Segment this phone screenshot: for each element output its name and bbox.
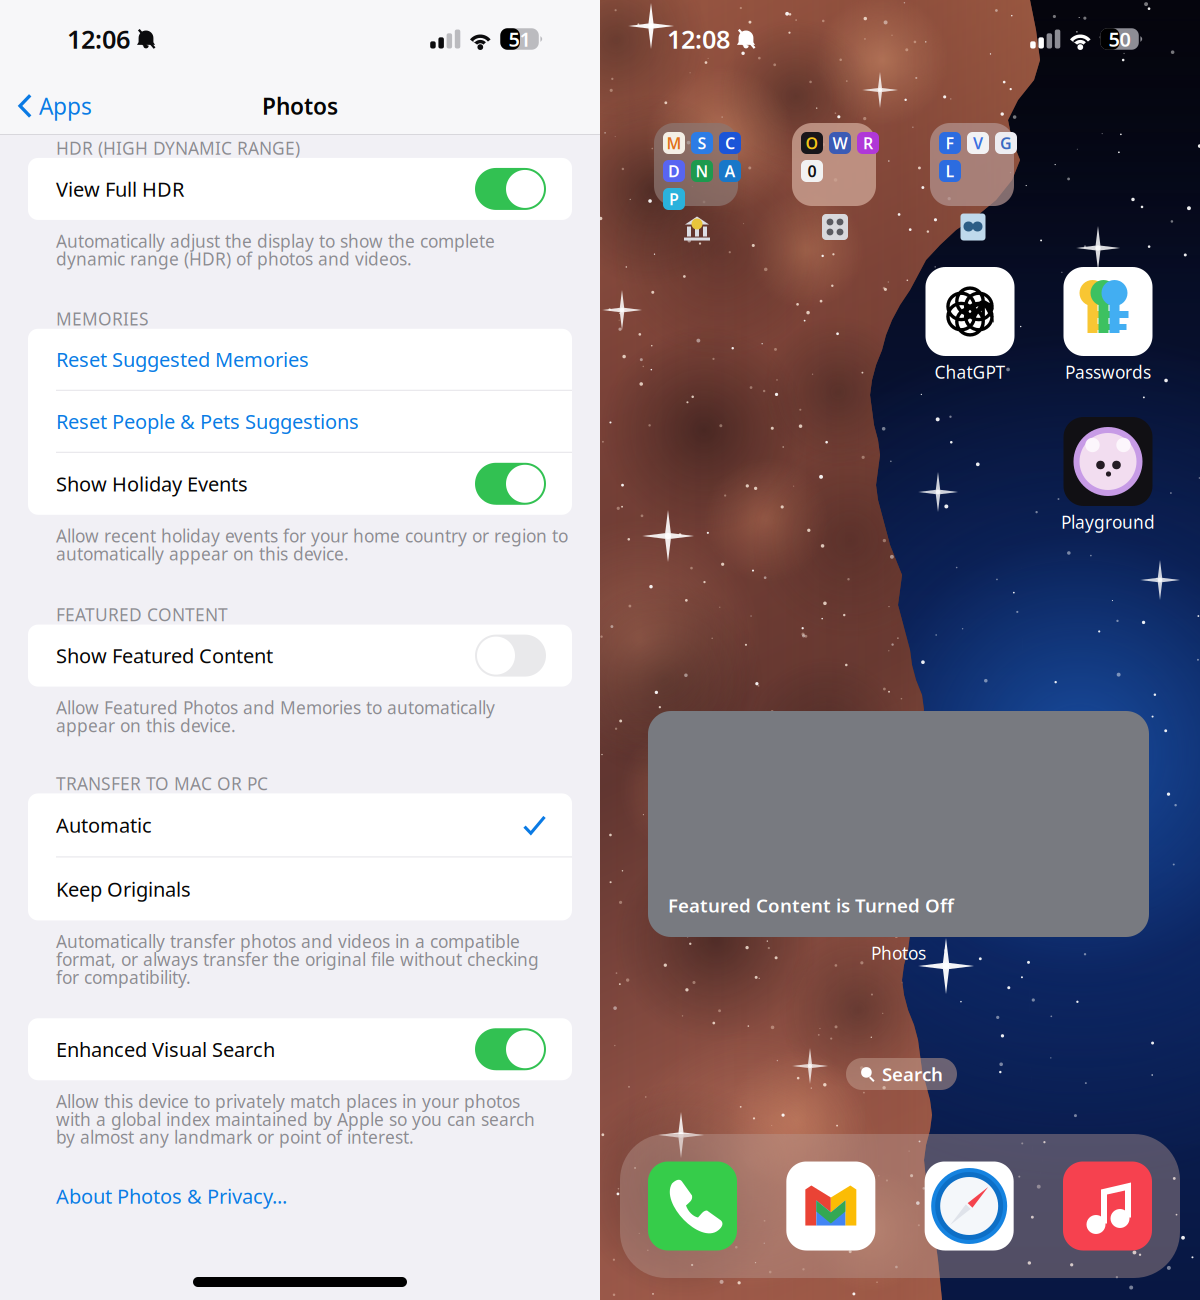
staticText: Allow this device to privately match pla… bbox=[56, 1092, 535, 1146]
button[interactable]: Automatic bbox=[28, 793, 572, 856]
staticText: Show Featured Content bbox=[56, 645, 273, 666]
button[interactable]: Keep Originals bbox=[28, 857, 572, 920]
staticText: Keep Originals bbox=[56, 879, 191, 899]
button[interactable]: Apps bbox=[0, 78, 92, 134]
staticText: F bbox=[945, 135, 954, 151]
staticText: W bbox=[832, 135, 847, 151]
staticText: 0 bbox=[807, 163, 816, 179]
button[interactable]: Featured Content is Turned Off bbox=[648, 711, 1149, 962]
staticText: Show Holiday Events bbox=[56, 473, 248, 494]
staticText: 51 bbox=[508, 29, 530, 49]
button[interactable]: View Full HDR bbox=[28, 158, 572, 220]
button[interactable]: Safari bbox=[925, 1161, 1014, 1250]
staticText: Featured Content is Turned Off bbox=[668, 896, 954, 915]
staticText: Apps bbox=[39, 94, 92, 118]
button[interactable]: Playground bbox=[1048, 417, 1168, 531]
staticText: Photos bbox=[262, 94, 338, 118]
staticText: Reset People & Pets Suggestions bbox=[56, 411, 359, 432]
button[interactable]: Health bbox=[958, 212, 988, 242]
staticText: Playground bbox=[1061, 513, 1155, 531]
staticText: P bbox=[669, 191, 679, 207]
button[interactable]: Dice bbox=[820, 212, 850, 242]
staticText: N bbox=[695, 163, 708, 179]
staticText: Automatically adjust the display to show… bbox=[56, 232, 495, 268]
staticText: R bbox=[863, 135, 873, 151]
staticText: C bbox=[725, 135, 735, 151]
staticText: O bbox=[805, 135, 818, 151]
button[interactable]: Passwords bbox=[1048, 267, 1168, 381]
staticText: M bbox=[666, 135, 681, 151]
button[interactable]: Crypto folder bbox=[654, 123, 738, 206]
button[interactable]: Reset Suggested Memories bbox=[28, 329, 572, 390]
staticText: FEATURED CONTENT bbox=[56, 606, 228, 624]
button[interactable]: ChatGPT bbox=[910, 267, 1030, 381]
button[interactable]: Design folder bbox=[930, 123, 1014, 206]
staticText: Enhanced Visual Search bbox=[56, 1039, 275, 1060]
staticText: Reset Suggested Memories bbox=[56, 349, 309, 370]
button[interactable]: About Photos & Privacy... bbox=[0, 1178, 600, 1214]
staticText: S bbox=[697, 135, 706, 151]
button[interactable]: Bank bbox=[682, 212, 712, 242]
staticText: L bbox=[945, 163, 954, 179]
button[interactable]: Show Featured Content bbox=[28, 625, 572, 687]
staticText: Search bbox=[882, 1064, 943, 1084]
staticText: Allow Featured Photos and Memories to au… bbox=[56, 699, 495, 734]
staticText: MEMORIES bbox=[56, 310, 149, 328]
staticText: ChatGPT bbox=[934, 363, 1005, 381]
button[interactable]: Show Holiday Events bbox=[28, 453, 572, 515]
staticText: Passwords bbox=[1065, 363, 1151, 381]
button[interactable]: Phone bbox=[648, 1161, 737, 1250]
staticText: Photos bbox=[871, 944, 926, 962]
button[interactable]: Search bbox=[846, 1058, 957, 1090]
staticText: TRANSFER TO MAC OR PC bbox=[56, 774, 268, 792]
staticText: G bbox=[1000, 135, 1012, 151]
staticText: Automatic bbox=[56, 815, 152, 835]
staticText: Automatically transfer photos and videos… bbox=[56, 932, 539, 986]
button[interactable]: Enhanced Visual Search bbox=[28, 1018, 572, 1080]
staticText: HDR (HIGH DYNAMIC RANGE) bbox=[56, 139, 300, 157]
staticText: About Photos & Privacy... bbox=[56, 1186, 287, 1206]
staticText: 12:06 bbox=[67, 26, 130, 52]
button[interactable]: Music bbox=[1063, 1161, 1152, 1250]
button[interactable]: Gmail bbox=[786, 1161, 875, 1250]
staticText: Allow recent holiday events for your hom… bbox=[56, 527, 568, 563]
button[interactable]: Tools folder bbox=[792, 123, 876, 206]
staticText: View Full HDR bbox=[56, 179, 184, 199]
staticText: 50 bbox=[1108, 29, 1130, 49]
button[interactable]: Reset People & Pets Suggestions bbox=[28, 391, 572, 452]
staticText: D bbox=[668, 163, 680, 179]
staticText: V bbox=[973, 135, 983, 151]
staticText: 12:08 bbox=[667, 26, 730, 52]
staticText: A bbox=[724, 163, 735, 179]
